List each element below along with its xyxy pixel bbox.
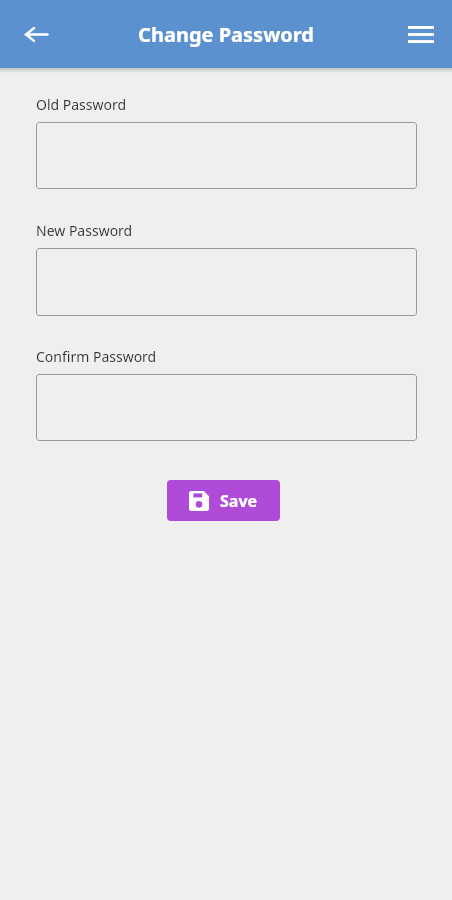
staticText: Save bbox=[220, 490, 258, 512]
button[interactable] bbox=[36, 374, 417, 441]
staticText: Old Password bbox=[36, 95, 127, 114]
button[interactable]: Menu bbox=[399, 12, 443, 56]
staticText: New Password bbox=[36, 221, 133, 240]
staticText: Confirm Password bbox=[36, 347, 157, 366]
button[interactable] bbox=[36, 248, 417, 316]
button[interactable] bbox=[36, 122, 417, 189]
button[interactable]: Back bbox=[14, 12, 58, 56]
staticText: Change Password bbox=[138, 21, 314, 48]
button[interactable]: Save bbox=[167, 480, 280, 521]
